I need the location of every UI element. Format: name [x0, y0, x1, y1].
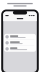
button[interactable]: Message from Jordan: [4, 40, 36, 46]
button[interactable]: Message from Sam: [4, 46, 36, 52]
button[interactable]: Message from Alex: [4, 34, 36, 40]
